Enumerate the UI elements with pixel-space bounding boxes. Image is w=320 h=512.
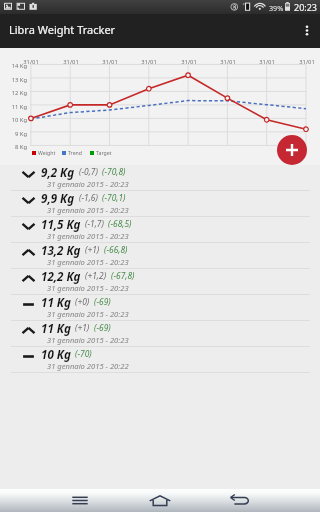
button[interactable]: Recent apps — [60, 489, 100, 512]
staticText: 31 gennaio 2015 - 20:23 — [47, 257, 129, 267]
staticText: 10 Kg — [41, 347, 71, 363]
staticText: 31 gennaio 2015 - 20:23 — [47, 205, 129, 215]
staticText: 39% — [269, 3, 284, 13]
staticText: 31 gennaio 2015 - 20:23 — [47, 283, 129, 293]
staticText: (-70,8) — [102, 166, 126, 177]
staticText: 11 Kg — [0, 103, 27, 111]
button[interactable]: Add weight entry — [277, 135, 307, 165]
staticText: 13 Kg — [0, 76, 27, 84]
staticText: 9,2 Kg — [41, 165, 75, 181]
staticText: 9 Kg — [0, 130, 27, 138]
staticText: 13,2 Kg — [41, 243, 81, 259]
staticText: 14 Kg — [0, 62, 27, 70]
staticText: 31/01 — [175, 58, 203, 66]
staticText: 11,5 Kg — [41, 217, 81, 233]
staticText: 11 Kg — [41, 321, 71, 337]
button[interactable]: 11 Kg — [0, 295, 320, 321]
staticText: (-1,6) — [79, 192, 98, 203]
staticText: 31/01 — [214, 58, 242, 66]
staticText: 31/01 — [17, 58, 45, 66]
staticText: 31/01 — [135, 58, 163, 66]
staticText: (-69) — [94, 322, 111, 333]
button[interactable]: 9,2 Kg — [0, 165, 320, 191]
staticText: (-69) — [94, 296, 111, 307]
staticText: 12,2 Kg — [41, 269, 81, 285]
staticText: 31/01 — [293, 58, 320, 66]
button[interactable]: 11,5 Kg — [0, 217, 320, 243]
staticText: (-0,7) — [79, 166, 98, 177]
staticText: 10 Kg — [0, 116, 27, 124]
staticText: 8 Kg — [0, 143, 27, 151]
staticText: (-70) — [75, 348, 92, 359]
staticText: 31/01 — [57, 58, 85, 66]
staticText: (-70,1) — [102, 192, 126, 203]
button[interactable]: 12,2 Kg — [0, 269, 320, 295]
button[interactable]: 13,2 Kg — [0, 243, 320, 269]
staticText: 31/01 — [253, 58, 281, 66]
button[interactable]: Home — [140, 489, 180, 512]
staticText: 31 gennaio 2015 - 20:23 — [47, 309, 129, 319]
staticText: 9,9 Kg — [41, 191, 75, 207]
staticText: 11 Kg — [41, 295, 71, 311]
staticText: (-1,7) — [85, 218, 104, 229]
staticText: (+0) — [75, 296, 90, 307]
staticText: (-66,8) — [104, 244, 128, 255]
staticText: 31 gennaio 2015 - 20:23 — [47, 335, 129, 345]
staticText: 31 gennaio 2015 - 20:22 — [47, 361, 129, 371]
button[interactable]: 10 Kg — [0, 347, 320, 373]
staticText: Trend — [68, 149, 82, 156]
button[interactable]: Back — [220, 489, 260, 512]
staticText: 31 gennaio 2015 - 20:23 — [47, 179, 129, 189]
staticText: 31/01 — [96, 58, 124, 66]
staticText: 20:23 — [294, 1, 318, 13]
staticText: Libra Weight Tracker — [9, 22, 116, 37]
staticText: (+1) — [85, 244, 100, 255]
button[interactable]: 11 Kg — [0, 321, 320, 347]
staticText: Target — [96, 149, 112, 156]
staticText: (-67,8) — [111, 270, 135, 281]
staticText: (+1,2) — [85, 270, 107, 281]
staticText: 12 Kg — [0, 89, 27, 97]
staticText: Weight — [38, 149, 56, 156]
staticText: 31 gennaio 2015 - 20:23 — [47, 231, 129, 241]
staticText: (+1) — [75, 322, 90, 333]
button[interactable]: 9,9 Kg — [0, 191, 320, 217]
staticText: (-68,5) — [108, 218, 132, 229]
button[interactable]: More options — [294, 14, 320, 48]
